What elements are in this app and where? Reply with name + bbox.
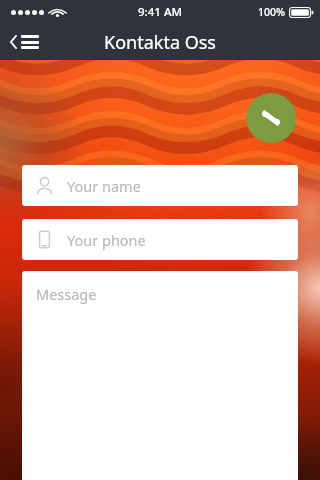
staticText: 100%: [258, 5, 285, 19]
button[interactable]: Message: [22, 271, 298, 480]
staticText: Your phone: [67, 230, 146, 250]
button[interactable]: Your name: [22, 165, 298, 206]
staticText: Your name: [67, 176, 141, 196]
staticText: 9:41 AM: [138, 4, 182, 20]
button[interactable]: Call us: [246, 93, 296, 143]
staticText: Kontakta Oss: [104, 30, 216, 55]
button[interactable]: Your phone: [22, 219, 298, 260]
staticText: Message: [36, 284, 97, 304]
button[interactable]: Open navigation menu: [0, 29, 49, 55]
